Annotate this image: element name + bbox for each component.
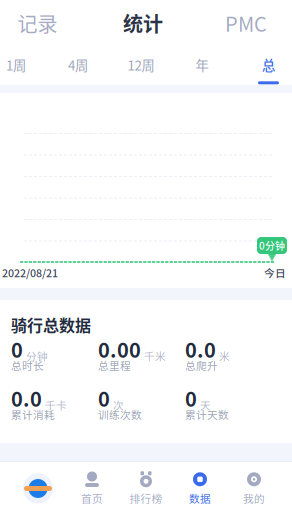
- button[interactable]: 我的: [227, 462, 281, 515]
- staticText: 12周: [127, 55, 154, 74]
- staticText: 统计: [123, 8, 163, 37]
- button[interactable]: 年: [158, 46, 246, 85]
- button[interactable]: 1周: [0, 46, 32, 85]
- staticText: PMC: [225, 8, 267, 37]
- staticText: 数据: [189, 490, 211, 506]
- staticText: 排行榜: [129, 490, 162, 506]
- button[interactable]: 数据: [173, 462, 227, 515]
- staticText: 总时长: [11, 358, 44, 373]
- button[interactable]: 统计: [75, 0, 211, 46]
- button[interactable]: 12周: [124, 46, 158, 85]
- staticText: 0: [98, 383, 110, 412]
- button[interactable]: 发现: [11, 462, 65, 515]
- button[interactable]: 记录: [0, 0, 75, 46]
- button[interactable]: 首页: [65, 462, 119, 515]
- staticText: 骑行总数据: [11, 313, 91, 336]
- staticText: 我的: [243, 490, 265, 506]
- staticText: 记录: [17, 8, 57, 37]
- staticText: 0: [11, 334, 23, 363]
- staticText: 0.0: [185, 334, 216, 363]
- staticText: 天: [200, 397, 211, 412]
- button[interactable]: 总: [246, 46, 291, 85]
- staticText: 总里程: [98, 358, 131, 373]
- button[interactable]: 排行榜: [119, 462, 173, 515]
- staticText: 2022/08/21: [2, 265, 58, 280]
- staticText: 总爬升: [185, 358, 218, 373]
- staticText: 0.0: [11, 383, 42, 412]
- staticText: 千卡: [45, 397, 67, 412]
- staticText: 4周: [68, 55, 88, 74]
- staticText: 首页: [81, 490, 103, 506]
- staticText: 次: [113, 397, 124, 412]
- staticText: 千米: [144, 348, 166, 363]
- button[interactable]: PMC: [211, 0, 281, 46]
- staticText: 0.00: [98, 334, 141, 363]
- staticText: 0: [185, 383, 197, 412]
- staticText: 年: [195, 55, 208, 74]
- staticText: 训练次数: [98, 407, 142, 422]
- staticText: 0分钟: [259, 238, 285, 253]
- staticText: 累计消耗: [11, 407, 55, 422]
- button[interactable]: 4周: [32, 46, 124, 85]
- staticText: 1周: [6, 55, 26, 74]
- staticText: 累计天数: [185, 407, 229, 422]
- staticText: 今日: [264, 265, 286, 280]
- staticText: 米: [219, 348, 230, 363]
- staticText: 分钟: [26, 348, 48, 363]
- staticText: 总: [262, 55, 275, 74]
